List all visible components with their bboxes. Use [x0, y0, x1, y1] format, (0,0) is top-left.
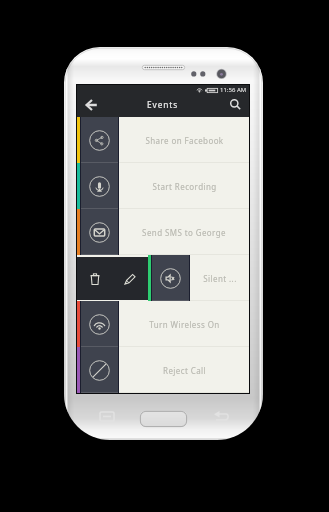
button[interactable]: Back — [79, 93, 103, 116]
staticText: Reject Call — [163, 365, 206, 376]
button[interactable]: Delete — [77, 255, 249, 301]
staticText: Events — [147, 99, 179, 110]
other: Menu — [100, 412, 114, 421]
button[interactable]: Turn Wireless On — [77, 301, 249, 347]
button[interactable]: Start Recording — [77, 163, 249, 209]
button[interactable]: Delete — [77, 257, 112, 300]
button[interactable]: Search — [223, 93, 247, 116]
staticText: Silent ... — [203, 273, 237, 284]
button[interactable]: Share on Facebook — [77, 117, 249, 163]
button[interactable]: Reject Call — [77, 347, 249, 393]
button[interactable]: Home — [140, 411, 187, 427]
button[interactable]: Edit — [112, 257, 147, 300]
staticText: 11:56 AM — [220, 86, 247, 94]
staticText: Share on Facebook — [145, 135, 224, 146]
staticText: Turn Wireless On — [149, 319, 220, 330]
other: Back — [214, 412, 229, 421]
staticText: Send SMS to George — [142, 227, 226, 238]
staticText: Start Recording — [152, 181, 217, 192]
button[interactable]: Send SMS to George — [77, 209, 249, 255]
